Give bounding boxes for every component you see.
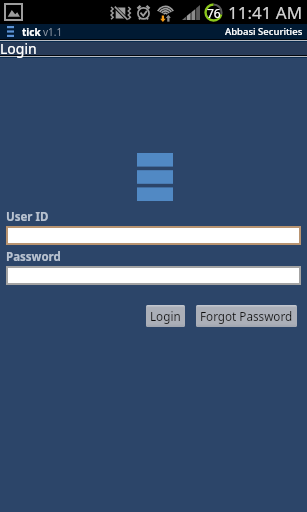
staticText: 76	[207, 5, 221, 21]
staticText: Login	[150, 308, 181, 324]
button[interactable]	[6, 226, 301, 245]
other: Battery 76 percent	[204, 3, 223, 22]
staticText: Abbasi Securities	[225, 25, 303, 38]
other: Navigation drawer	[7, 26, 14, 37]
button[interactable]: Login	[146, 305, 185, 327]
staticText: 11:41 AM	[228, 1, 303, 24]
staticText: Login	[0, 39, 37, 58]
other: Screenshot captured	[5, 4, 22, 20]
button[interactable]: Forgot Password	[196, 305, 297, 327]
staticText: User ID	[6, 209, 49, 225]
button[interactable]	[6, 266, 301, 285]
staticText: Password	[6, 249, 61, 265]
staticText: tick	[22, 25, 41, 39]
staticText: Forgot Password	[200, 308, 293, 324]
staticText: v1.1	[43, 25, 63, 39]
